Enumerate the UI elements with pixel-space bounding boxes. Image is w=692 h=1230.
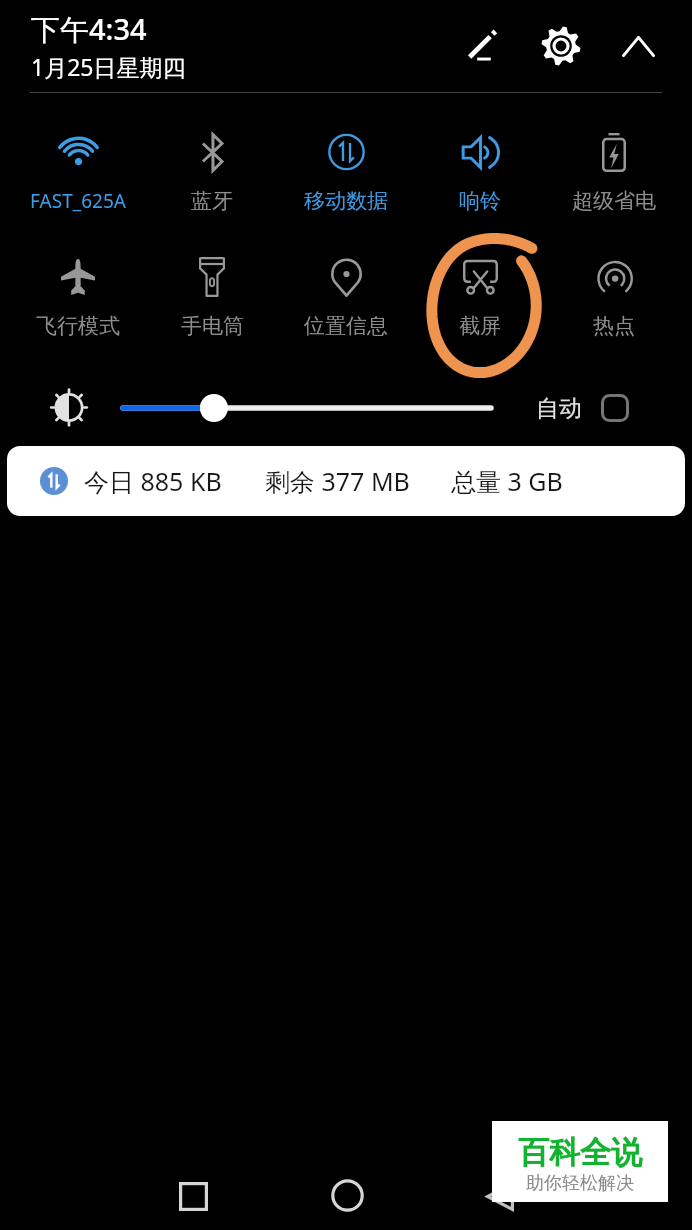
button[interactable]: Settings <box>531 16 591 76</box>
button[interactable]: 飞行模式 <box>11 235 145 339</box>
staticText: 超级省电 <box>572 188 656 214</box>
staticText: 今日 885 KB <box>84 464 222 498</box>
staticText: 蓝牙 <box>191 188 233 214</box>
staticText: 截屏 <box>459 313 501 339</box>
button[interactable]: 超级省电 <box>547 110 681 214</box>
staticText: 助你轻松解决 <box>526 1172 634 1195</box>
staticText: 剩余 377 MB <box>265 464 410 498</box>
button[interactable]: 蓝牙 <box>145 110 279 214</box>
button[interactable]: Collapse <box>608 16 668 76</box>
staticText: 自动 <box>536 394 582 423</box>
button[interactable]: 今日 885 KB <box>7 446 685 516</box>
staticText: 飞行模式 <box>36 313 120 339</box>
staticText: 下午4:34 <box>31 9 147 49</box>
button[interactable]: 移动数据 <box>279 110 413 214</box>
button[interactable]: 手电筒 <box>145 235 279 339</box>
button[interactable]: Auto brightness <box>601 394 629 422</box>
staticText: FAST_625A <box>30 188 126 214</box>
staticText: 总量 3 GB <box>451 464 563 498</box>
staticText: 响铃 <box>459 188 501 214</box>
button[interactable]: Home <box>317 1165 377 1225</box>
staticText: 位置信息 <box>304 313 388 339</box>
button[interactable]: Recents <box>163 1166 223 1226</box>
button[interactable]: 截屏 <box>413 235 547 339</box>
button[interactable]: 响铃 <box>413 110 547 214</box>
staticText: 手电筒 <box>181 313 244 339</box>
staticText: 百科全说 <box>518 1133 642 1172</box>
button[interactable]: 位置信息 <box>279 235 413 339</box>
staticText: 热点 <box>593 313 635 339</box>
staticText: 移动数据 <box>304 188 388 214</box>
staticText: 1月25日星期四 <box>31 51 186 82</box>
button[interactable]: Edit <box>453 16 513 76</box>
button[interactable]: FAST_625A <box>11 110 145 214</box>
button[interactable]: Back <box>470 1166 530 1226</box>
button[interactable]: 热点 <box>547 235 681 339</box>
